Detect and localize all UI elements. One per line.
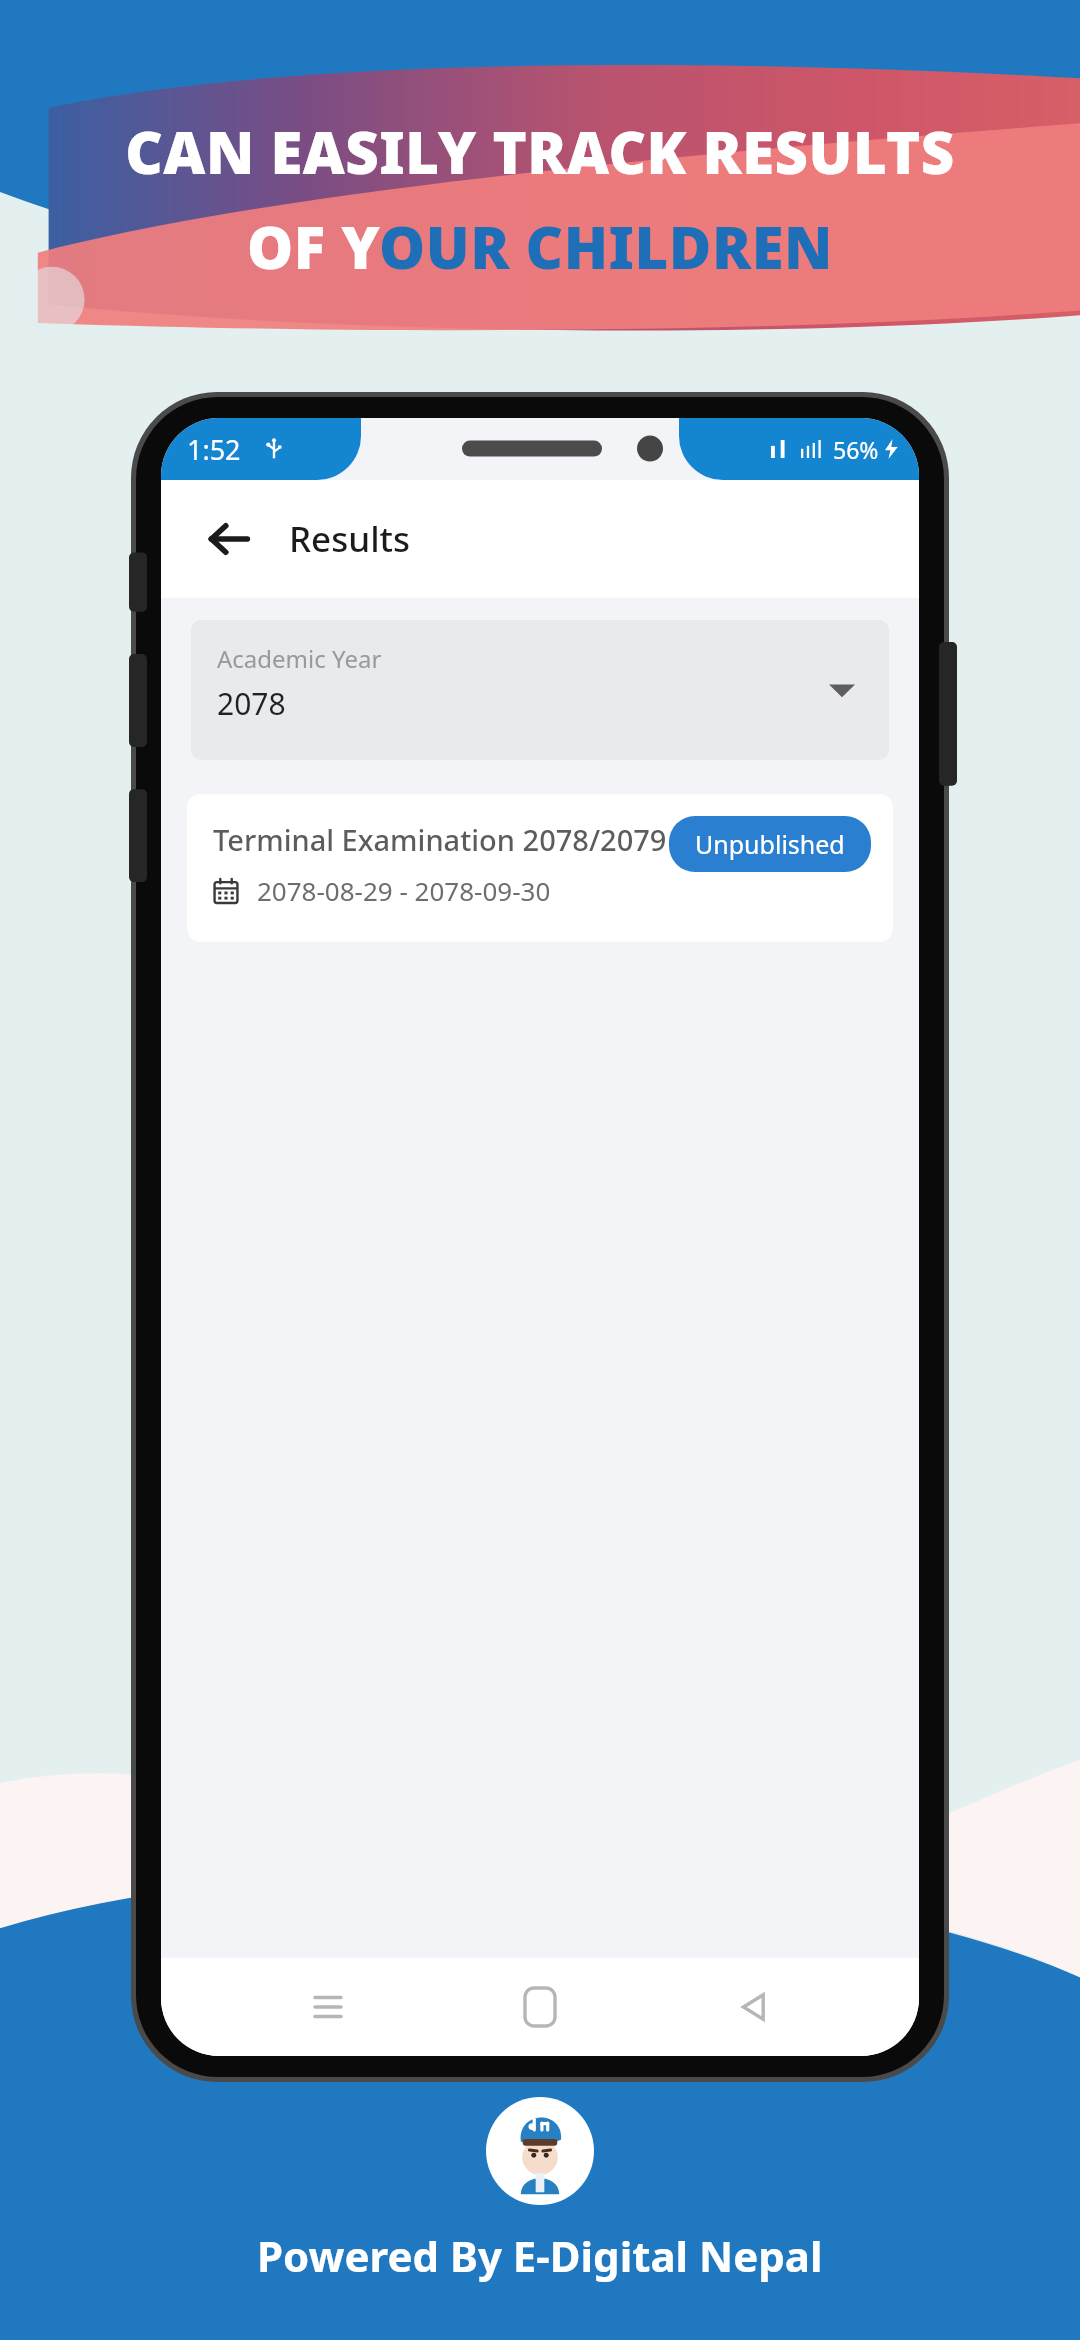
button[interactable]: Back (195, 505, 263, 573)
staticText: Powered By E-Digital Nepal (257, 2227, 823, 2284)
button[interactable]: Recents (282, 1961, 374, 2053)
button[interactable]: Home (494, 1961, 586, 2053)
staticText: 56% (833, 434, 879, 465)
staticText: OF YOUR CHILDREN (247, 207, 833, 286)
staticText: Academic Year (217, 642, 382, 675)
staticText: Results (289, 515, 411, 563)
staticText: CAN EASILY TRACK RESULTS (125, 112, 955, 191)
button[interactable]: Back (707, 1961, 799, 2053)
staticText: Terminal Examination 2078/2079 (213, 820, 667, 859)
staticText: Unpublished (695, 827, 845, 861)
button[interactable]: Terminal Examination 2078/2079 (187, 794, 893, 942)
staticText: 1:52 (187, 431, 241, 468)
staticText: 2078-08-29 - 2078-09-30 (257, 873, 551, 908)
staticText: 2078 (217, 683, 286, 724)
button[interactable]: Unpublished (669, 816, 871, 872)
button[interactable]: Academic Year (191, 620, 889, 760)
